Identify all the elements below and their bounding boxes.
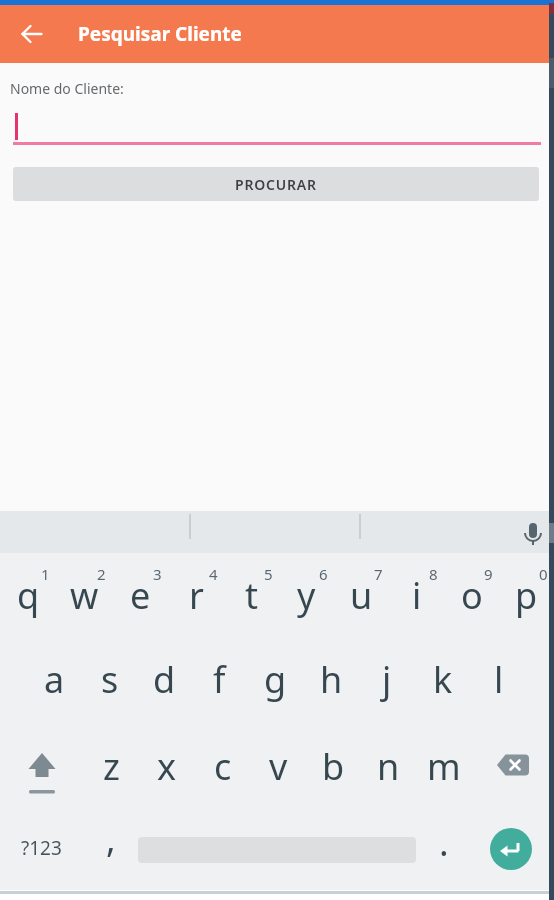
- button[interactable]: z: [83, 721, 139, 805]
- staticText: 1: [41, 564, 50, 584]
- staticText: g: [264, 655, 287, 704]
- staticText: w: [70, 571, 99, 620]
- staticText: 7: [374, 564, 383, 584]
- button[interactable]: PROCURAR: [13, 167, 539, 201]
- staticText: o: [461, 571, 483, 620]
- button[interactable]: m: [416, 721, 471, 805]
- button[interactable]: 4: [168, 553, 224, 637]
- button[interactable]: h: [303, 637, 359, 721]
- button[interactable]: [471, 805, 554, 890]
- button[interactable]: k: [415, 637, 471, 721]
- staticText: ,: [106, 814, 116, 863]
- button[interactable]: [471, 721, 554, 805]
- button[interactable]: j: [359, 637, 415, 721]
- staticText: j: [382, 655, 392, 704]
- staticText: Pesquisar Cliente: [78, 21, 242, 47]
- button[interactable]: [0, 721, 83, 805]
- staticText: r: [189, 571, 204, 620]
- staticText: t: [245, 571, 258, 620]
- staticText: 9: [484, 564, 493, 584]
- staticText: 2: [97, 564, 106, 584]
- button[interactable]: .: [416, 805, 471, 890]
- button[interactable]: g: [247, 637, 303, 721]
- staticText: n: [377, 742, 400, 791]
- staticText: PROCURAR: [235, 175, 317, 194]
- staticText: m: [427, 742, 461, 791]
- staticText: 8: [429, 564, 438, 584]
- button[interactable]: [521, 522, 545, 546]
- staticText: v: [269, 742, 288, 791]
- button[interactable]: [138, 805, 416, 890]
- button[interactable]: 1: [0, 553, 56, 637]
- button[interactable]: d: [137, 637, 192, 721]
- staticText: c: [214, 742, 232, 791]
- button[interactable]: 8: [389, 553, 444, 637]
- button[interactable]: 0: [499, 553, 554, 637]
- button[interactable]: ,: [83, 805, 138, 890]
- staticText: x: [157, 742, 177, 791]
- staticText: h: [320, 655, 343, 704]
- button[interactable]: 5: [224, 553, 279, 637]
- staticText: k: [433, 655, 453, 704]
- staticText: .: [439, 818, 449, 867]
- staticText: f: [213, 655, 226, 704]
- button[interactable]: n: [361, 721, 416, 805]
- staticText: 3: [153, 564, 162, 584]
- staticText: y: [297, 571, 316, 620]
- button[interactable]: b: [306, 721, 361, 805]
- staticText: d: [153, 655, 176, 704]
- staticText: ?123: [21, 835, 62, 861]
- button[interactable]: ?123: [0, 805, 83, 890]
- staticText: 5: [264, 564, 273, 584]
- button[interactable]: [13, 108, 541, 145]
- button[interactable]: x: [139, 721, 195, 805]
- staticText: p: [515, 571, 538, 620]
- staticText: z: [103, 742, 120, 791]
- button[interactable]: v: [251, 721, 306, 805]
- button[interactable]: s: [82, 637, 137, 721]
- staticText: q: [17, 571, 40, 620]
- button[interactable]: 6: [279, 553, 334, 637]
- staticText: e: [130, 571, 151, 620]
- button[interactable]: a: [27, 637, 82, 721]
- staticText: Nome do Cliente:: [10, 79, 124, 98]
- button[interactable]: f: [192, 637, 247, 721]
- button[interactable]: c: [195, 721, 251, 805]
- staticText: a: [44, 655, 65, 704]
- button[interactable]: 7: [334, 553, 389, 637]
- staticText: 4: [209, 564, 218, 584]
- staticText: i: [412, 571, 422, 620]
- button[interactable]: 3: [112, 553, 168, 637]
- button[interactable]: 9: [444, 553, 499, 637]
- staticText: u: [350, 571, 373, 620]
- button[interactable]: l: [471, 637, 527, 721]
- staticText: 6: [319, 564, 328, 584]
- staticText: l: [494, 655, 504, 704]
- button[interactable]: [14, 16, 50, 52]
- staticText: 0: [539, 564, 548, 584]
- staticText: s: [101, 655, 119, 704]
- button[interactable]: 2: [56, 553, 112, 637]
- staticText: b: [322, 742, 345, 791]
